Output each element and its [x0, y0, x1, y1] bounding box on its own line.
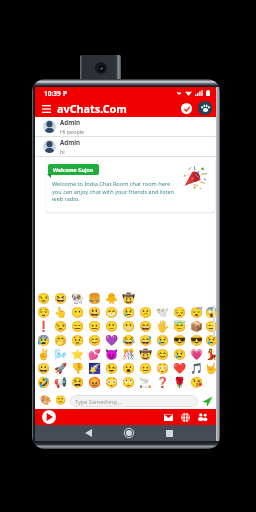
button[interactable]: 😇 — [171, 319, 188, 333]
button[interactable]: 😀 — [35, 361, 52, 375]
staticText: 😑 — [71, 320, 85, 332]
button[interactable]: 😁 — [103, 305, 120, 319]
button[interactable]: 😐 — [86, 319, 103, 333]
button[interactable]: 😱 — [205, 305, 216, 319]
button[interactable]: Type Something ... — [70, 395, 198, 407]
button[interactable]: 😄 — [137, 319, 154, 333]
button[interactable]: 😐 — [137, 361, 154, 375]
button[interactable]: Recent apps — [162, 426, 176, 440]
button[interactable]: Admin — [35, 137, 216, 156]
staticText: 😅 — [139, 334, 153, 346]
staticText: 😈 — [105, 348, 119, 360]
button[interactable]: 😈 — [103, 347, 120, 361]
button[interactable]: 😢 — [171, 347, 188, 361]
button[interactable]: Profile — [198, 101, 212, 115]
button[interactable]: 💜 — [103, 333, 120, 347]
button[interactable]: Play web radio — [42, 410, 56, 424]
staticText: 😊 — [156, 348, 170, 360]
button[interactable]: 📦 — [188, 319, 205, 333]
button[interactable]: Rooms — [179, 411, 191, 423]
button[interactable]: 🎵 — [188, 361, 205, 375]
button[interactable]: 😂 — [120, 333, 137, 347]
button[interactable]: ❓ — [154, 375, 171, 389]
button[interactable]: 🌹 — [171, 375, 188, 389]
staticText: 😑 — [205, 320, 216, 332]
button[interactable]: 😎 — [171, 333, 188, 347]
button[interactable]: 🖐 — [154, 319, 171, 333]
button[interactable]: 😌 — [35, 305, 52, 319]
button[interactable]: 😳 — [103, 375, 120, 389]
button[interactable]: 🐥 — [103, 291, 120, 305]
staticText: 🌠 — [88, 362, 102, 374]
button[interactable]: ✌ — [35, 347, 52, 361]
button[interactable]: 🕊 — [154, 305, 171, 319]
button[interactable]: 😡 — [86, 375, 103, 389]
button[interactable]: 😢 — [154, 333, 171, 347]
button[interactable]: Theme colour — [40, 395, 51, 406]
button[interactable]: Emoji keyboard — [55, 395, 66, 406]
button[interactable]: 😔 — [171, 305, 188, 319]
button[interactable]: 😑 — [205, 319, 216, 333]
button[interactable]: 😉 — [103, 361, 120, 375]
button[interactable]: 😰 — [35, 333, 52, 347]
button[interactable]: 😆 — [52, 291, 69, 305]
button[interactable]: Messages — [162, 411, 174, 423]
button[interactable]: 😊 — [154, 347, 171, 361]
button[interactable]: Admin — [35, 117, 216, 136]
button[interactable]: 😘 — [188, 375, 205, 389]
button[interactable]: 🤟 — [205, 361, 216, 375]
button[interactable]: Users online — [196, 411, 208, 423]
button[interactable]: 🚀 — [52, 361, 69, 375]
button[interactable]: 🙄 — [120, 375, 137, 389]
button[interactable]: ⭐ — [69, 347, 86, 361]
button[interactable]: 😃 — [86, 305, 103, 319]
button[interactable]: 😴 — [188, 305, 205, 319]
button[interactable]: Home — [122, 426, 136, 440]
button[interactable]: Back — [81, 426, 95, 440]
button[interactable]: 😅 — [137, 333, 154, 347]
button[interactable]: Open navigation menu — [40, 102, 53, 115]
button[interactable]: 🐏 — [69, 291, 86, 305]
button[interactable]: 🌬 — [52, 347, 69, 361]
button[interactable]: 🙂 — [103, 319, 120, 333]
button[interactable]: 💗 — [188, 347, 205, 361]
button[interactable]: 🚬 — [137, 375, 154, 389]
staticText: 🎨 — [40, 395, 51, 406]
button[interactable]: 🍔 — [86, 291, 103, 305]
button[interactable]: 😒 — [35, 291, 52, 305]
button[interactable]: 😶 — [69, 305, 86, 319]
button[interactable]: 👆 — [52, 305, 69, 319]
staticText: Welcome Gujoo — [53, 166, 94, 173]
button[interactable]: 😬 — [120, 319, 137, 333]
button[interactable]: 🤣 — [35, 375, 52, 389]
button[interactable]: 🤠 — [137, 347, 154, 361]
button[interactable]: 😢 — [120, 305, 137, 319]
button[interactable]: ❗ — [35, 319, 52, 333]
button[interactable]: 🤭 — [52, 333, 69, 347]
button[interactable]: 😢 — [205, 333, 216, 347]
button[interactable]: 😳 — [154, 361, 171, 375]
button[interactable]: 🌠 — [86, 361, 103, 375]
button[interactable]: 💕 — [86, 347, 103, 361]
button[interactable]: 🤠 — [120, 291, 137, 305]
button[interactable]: 📢 — [52, 375, 69, 389]
button[interactable]: 💃 — [205, 347, 216, 361]
button[interactable]: 😑 — [69, 319, 86, 333]
button[interactable]: Send message — [200, 394, 214, 408]
staticText: hi — [60, 148, 65, 155]
button[interactable]: 😮 — [120, 361, 137, 375]
button[interactable]: 👎 — [69, 361, 86, 375]
staticText: 🙂 — [105, 320, 119, 332]
button[interactable]: 😕 — [137, 305, 154, 319]
button[interactable]: 😎 — [188, 333, 205, 347]
button[interactable]: 😊 — [86, 333, 103, 347]
button[interactable]: 😟 — [69, 333, 86, 347]
staticText: 😢 — [205, 334, 216, 346]
staticText: 🖐 — [156, 320, 170, 332]
button[interactable]: 😫 — [69, 375, 86, 389]
staticText: 😶 — [71, 306, 85, 318]
button[interactable]: 🎊 — [120, 347, 137, 361]
button[interactable]: Verified account — [181, 103, 192, 114]
button[interactable]: 😒 — [52, 319, 69, 333]
button[interactable]: ❤️ — [171, 361, 188, 375]
